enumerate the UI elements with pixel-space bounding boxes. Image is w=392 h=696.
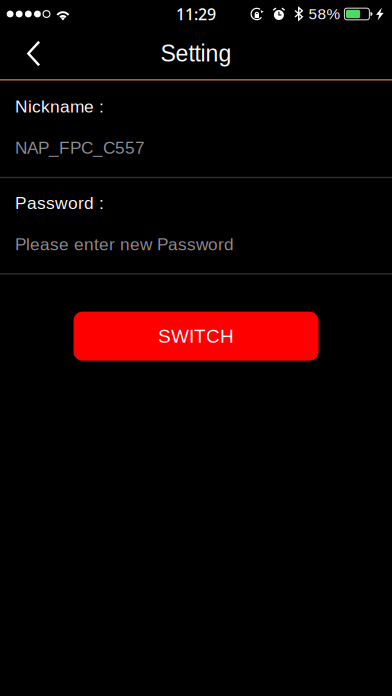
staticText: NAP_FPC_C557	[15, 138, 145, 157]
staticText: Nickname :	[15, 97, 104, 116]
button[interactable]: SWITCH	[73, 312, 318, 361]
staticText: 58%	[308, 5, 340, 22]
staticText: Please enter new Password	[15, 235, 234, 254]
button[interactable]: Back	[14, 27, 70, 79]
button[interactable]: Please enter new Password	[0, 215, 392, 273]
button[interactable]: NAP_FPC_C557	[0, 119, 392, 177]
staticText: 11:29	[176, 3, 216, 25]
staticText: Setting	[160, 41, 231, 66]
staticText: Password :	[15, 193, 104, 213]
staticText: SWITCH	[158, 325, 234, 347]
